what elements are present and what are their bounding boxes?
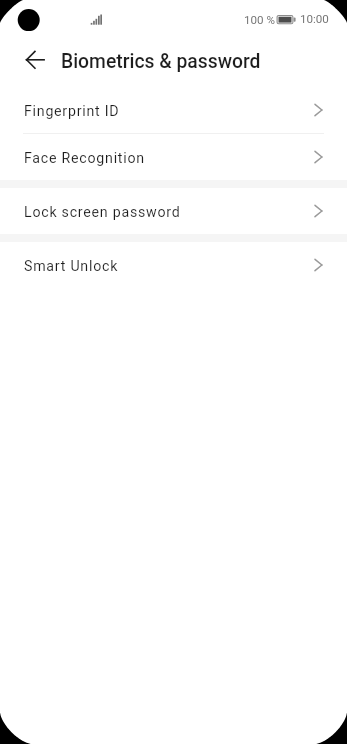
staticText: Smart Unlock [24, 258, 119, 275]
button[interactable]: Lock screen password [0, 188, 347, 234]
staticText: Face Recognition [24, 150, 145, 167]
button[interactable]: Smart Unlock [0, 242, 347, 288]
staticText: 10:00 [300, 12, 329, 26]
staticText: 100 % [244, 13, 275, 27]
staticText: Biometrics & password [61, 50, 261, 73]
staticText: Lock screen password [24, 204, 181, 221]
button[interactable]: Face Recognition [0, 134, 347, 180]
button[interactable]: Fingerprint ID [0, 87, 347, 133]
staticText: Fingerprint ID [24, 103, 120, 120]
button[interactable]: Back [13, 46, 47, 80]
